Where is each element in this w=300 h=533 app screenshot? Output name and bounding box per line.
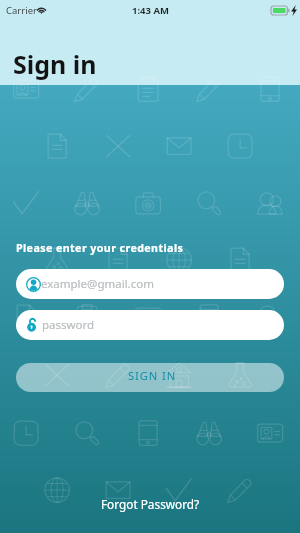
staticText: Sign in xyxy=(13,47,97,81)
button[interactable]: Forgot Password? xyxy=(91,491,210,517)
staticText: SIGN IN xyxy=(128,368,177,383)
staticText: Please enter your credentials xyxy=(16,241,184,256)
button[interactable]: password xyxy=(16,310,284,340)
button[interactable]: example@gmail.com xyxy=(16,269,284,299)
staticText: example@gmail.com xyxy=(41,276,154,292)
button[interactable]: SIGN IN xyxy=(16,363,284,392)
staticText: Carrier xyxy=(6,4,37,17)
staticText: password xyxy=(42,317,95,333)
staticText: 1:43 AM xyxy=(132,4,169,17)
